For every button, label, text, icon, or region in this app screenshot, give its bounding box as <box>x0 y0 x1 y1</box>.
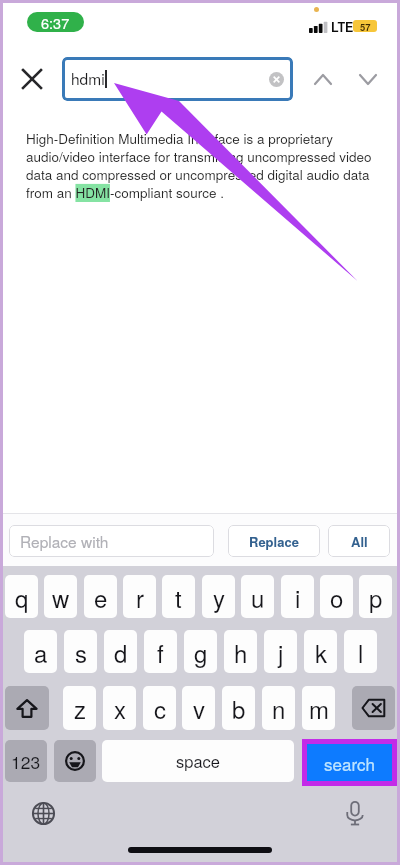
staticText: a <box>34 635 48 669</box>
button[interactable]: y <box>202 575 235 618</box>
staticText: q <box>15 580 29 614</box>
staticText: search <box>324 751 375 775</box>
staticText: m <box>309 691 329 725</box>
staticText: d <box>114 635 128 669</box>
button[interactable]: f <box>144 630 177 673</box>
button[interactable]: Dictate <box>337 795 373 831</box>
button[interactable]: 123 <box>5 740 47 782</box>
staticText: v <box>193 691 205 725</box>
staticText: e <box>94 580 108 614</box>
staticText: t <box>175 580 182 614</box>
staticText: u <box>251 580 265 614</box>
staticText: r <box>136 580 144 614</box>
button[interactable]: All <box>328 525 390 557</box>
button[interactable]: r <box>123 575 156 618</box>
staticText: w <box>52 580 70 614</box>
button[interactable]: space <box>102 740 294 782</box>
staticText: y <box>213 580 225 614</box>
staticText: Replace with <box>20 530 109 552</box>
button[interactable]: k <box>304 630 337 673</box>
button[interactable]: c <box>143 686 176 730</box>
button[interactable]: Replace with <box>9 525 214 557</box>
staticText: p <box>369 580 383 614</box>
button[interactable]: Shift <box>5 686 49 730</box>
staticText: 123 <box>11 749 41 774</box>
button[interactable]: s <box>64 630 97 673</box>
button[interactable]: j <box>264 630 297 673</box>
staticText: j <box>278 635 284 669</box>
staticText: Replace <box>249 532 299 551</box>
staticText: l <box>358 635 364 669</box>
staticText: c <box>154 691 166 725</box>
button[interactable]: z <box>63 686 96 730</box>
button[interactable]: n <box>262 686 295 730</box>
button[interactable]: t <box>162 575 195 618</box>
button[interactable]: u <box>241 575 274 618</box>
button[interactable]: Clear search text <box>264 67 288 91</box>
staticText: i <box>295 580 301 614</box>
button[interactable]: Replace <box>228 525 320 557</box>
button[interactable]: w <box>44 575 77 618</box>
button[interactable]: m <box>302 686 335 730</box>
button[interactable]: Previous match <box>306 63 339 96</box>
button[interactable]: a <box>24 630 57 673</box>
button[interactable]: Next match <box>351 63 384 96</box>
button[interactable]: h <box>224 630 257 673</box>
staticText: x <box>114 691 126 725</box>
staticText: b <box>232 691 246 725</box>
staticText: o <box>330 580 344 614</box>
button[interactable]: e <box>84 575 117 618</box>
button[interactable]: i <box>281 575 314 618</box>
staticText: All <box>351 532 368 551</box>
button[interactable]: l <box>344 630 377 673</box>
button[interactable]: v <box>182 686 215 730</box>
staticText: s <box>75 635 87 669</box>
staticText: z <box>74 691 86 725</box>
staticText: hdmi <box>71 67 105 89</box>
button[interactable]: p <box>359 575 392 618</box>
staticText: h <box>234 635 248 669</box>
staticText: space <box>176 749 221 773</box>
button[interactable]: o <box>320 575 353 618</box>
staticText: 6:37 <box>41 12 70 32</box>
staticText: f <box>157 635 164 669</box>
staticText: k <box>315 635 327 669</box>
staticText: n <box>272 691 286 725</box>
button[interactable]: Switch keyboard <box>25 795 61 831</box>
button[interactable]: x <box>103 686 136 730</box>
button[interactable]: Close find bar <box>14 61 50 97</box>
button[interactable]: Backspace <box>352 686 395 730</box>
staticText: g <box>194 635 208 669</box>
button[interactable]: q <box>5 575 38 618</box>
button[interactable]: d <box>104 630 137 673</box>
button[interactable]: Emoji keyboard <box>54 740 96 782</box>
button[interactable]: g <box>184 630 217 673</box>
staticText: LTE <box>331 18 354 36</box>
staticText: 57 <box>360 20 371 32</box>
staticText: High-Definition Multimedia Interface is … <box>26 129 372 202</box>
button[interactable]: search <box>307 744 392 781</box>
button[interactable]: b <box>222 686 255 730</box>
button[interactable]: hdmi <box>62 57 293 101</box>
